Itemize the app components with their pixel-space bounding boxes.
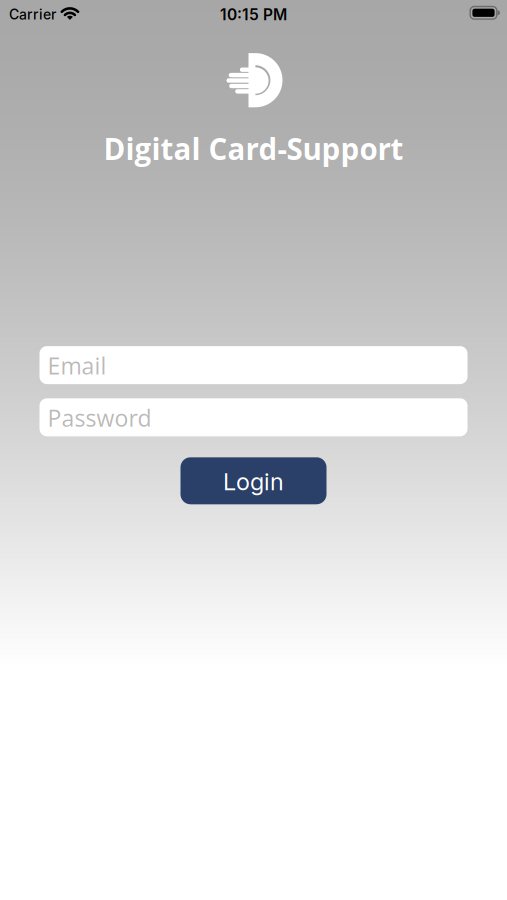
button[interactable]: Password	[39, 398, 467, 436]
staticText: Password	[47, 402, 151, 433]
button[interactable]: Login	[180, 457, 326, 504]
button[interactable]: Email	[39, 346, 467, 384]
staticText: Carrier	[9, 6, 56, 23]
staticText: Digital Card-Support	[103, 128, 403, 169]
staticText: Email	[47, 350, 106, 381]
staticText: Login	[223, 467, 284, 496]
staticText: 10:15 PM	[220, 5, 287, 24]
